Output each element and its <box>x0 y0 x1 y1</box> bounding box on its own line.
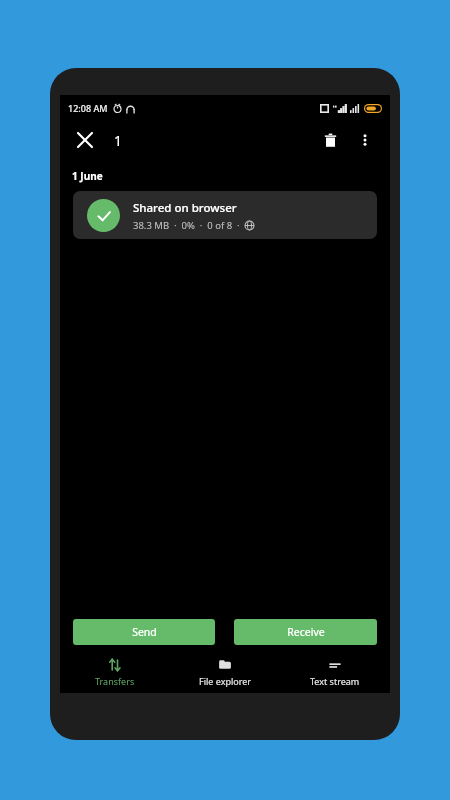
button[interactable]: Receive <box>234 619 377 645</box>
button[interactable]: Send <box>73 619 215 645</box>
staticText: Receive <box>287 625 325 639</box>
button[interactable]: Delete <box>314 124 346 156</box>
staticText: 12:08 AM <box>68 102 108 114</box>
button[interactable]: Shared on browser <box>73 191 377 239</box>
staticText: Shared on browser <box>133 200 237 216</box>
staticText: 1 June <box>72 169 103 183</box>
staticText: 1 <box>114 131 123 150</box>
staticText: Transfers <box>95 675 135 687</box>
button[interactable]: Close <box>70 125 100 155</box>
staticText: 38.3 MB · 0% · 0 of 8 · <box>133 219 245 232</box>
button[interactable]: File explorer <box>170 655 280 689</box>
staticText: Text stream <box>310 675 360 687</box>
staticText: Send <box>132 625 157 639</box>
staticText: File explorer <box>199 675 252 687</box>
button[interactable]: Transfers <box>60 655 170 689</box>
button[interactable]: More options <box>350 125 380 155</box>
button[interactable]: Text stream <box>280 655 390 689</box>
